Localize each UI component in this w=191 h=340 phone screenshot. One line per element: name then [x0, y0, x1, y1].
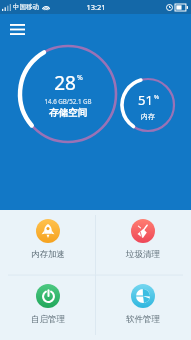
button[interactable]: 垃圾清理 [95, 210, 191, 275]
staticText: 内存加速 [31, 249, 65, 260]
button[interactable]: Menu [3, 15, 31, 43]
staticText: 28 [54, 70, 76, 96]
staticText: 中国移动 [13, 3, 39, 11]
staticText: 内存 [141, 112, 155, 121]
button[interactable]: 软件管理 [95, 275, 191, 340]
staticText: 垃圾清理 [126, 249, 160, 260]
staticText: 存储空间 [49, 107, 87, 119]
staticText: % [154, 93, 159, 101]
staticText: 13:21 [86, 2, 106, 12]
staticText: % [77, 73, 83, 83]
staticText: 14.6 GB/52.1 GB [44, 97, 92, 105]
staticText: 软件管理 [126, 314, 160, 325]
staticText: 51 [138, 91, 153, 109]
button[interactable]: 自启管理 [0, 275, 95, 340]
staticText: 自启管理 [31, 314, 65, 325]
button[interactable]: 内存加速 [0, 210, 95, 275]
